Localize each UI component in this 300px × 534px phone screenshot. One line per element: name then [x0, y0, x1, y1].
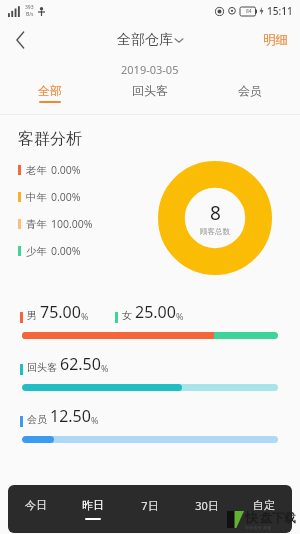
- staticText: 12.50: [50, 405, 91, 427]
- staticText: 女: [122, 309, 132, 322]
- staticText: 2019-03-05: [121, 62, 179, 77]
- staticText: 学信·安全·高速: [245, 525, 272, 530]
- button[interactable]: 全部: [0, 80, 100, 106]
- staticText: 会员: [238, 83, 262, 98]
- staticText: 84: [246, 8, 252, 15]
- button[interactable]: 全部仓库: [117, 31, 183, 49]
- staticText: 62.50: [60, 353, 101, 375]
- button[interactable]: 会员: [200, 80, 300, 106]
- staticText: 30日: [195, 498, 219, 513]
- staticText: 8: [210, 200, 221, 226]
- staticText: %: [81, 310, 89, 322]
- staticText: %: [101, 362, 109, 374]
- staticText: %: [176, 310, 184, 322]
- button[interactable]: 昨日: [64, 485, 121, 533]
- staticText: 自定: [253, 498, 275, 512]
- staticText: 老年: [26, 164, 47, 177]
- staticText: %: [91, 414, 99, 426]
- button[interactable]: 7日: [121, 485, 178, 533]
- staticText: 客群分析: [18, 129, 82, 149]
- staticText: 回头客: [27, 361, 57, 374]
- staticText: 顾客总数: [200, 227, 230, 236]
- staticText: 全部: [38, 83, 62, 98]
- staticText: 75.00: [40, 301, 81, 323]
- button[interactable]: 明细: [263, 32, 288, 48]
- staticText: 盘下载: [260, 510, 296, 525]
- staticText: 100.00%: [51, 217, 93, 231]
- staticText: 会员: [27, 413, 47, 426]
- button[interactable]: 30日: [178, 485, 235, 533]
- staticText: 快: [245, 509, 258, 525]
- staticText: 0.00%: [51, 244, 81, 258]
- staticText: 回头客: [132, 83, 168, 98]
- staticText: 25.00: [135, 301, 176, 323]
- staticText: B/s: [26, 11, 34, 18]
- staticText: 男: [27, 309, 37, 322]
- staticText: 15:11: [267, 4, 293, 18]
- button[interactable]: 今日: [8, 485, 64, 533]
- staticText: 青年: [26, 218, 47, 231]
- staticText: 全部仓库: [117, 31, 173, 49]
- staticText: 昨日: [82, 498, 104, 512]
- button[interactable]: 回头客: [100, 80, 200, 106]
- staticText: 今日: [25, 498, 47, 512]
- staticText: 少年: [26, 245, 47, 258]
- staticText: 0.00%: [51, 163, 81, 177]
- staticText: 7日: [141, 498, 159, 513]
- staticText: 明细: [263, 32, 288, 48]
- button[interactable]: Back: [0, 22, 40, 58]
- staticText: 中年: [26, 191, 47, 204]
- staticText: 0.00%: [51, 190, 81, 204]
- staticText: 393: [25, 4, 34, 11]
- button[interactable]: 自定: [235, 485, 292, 533]
